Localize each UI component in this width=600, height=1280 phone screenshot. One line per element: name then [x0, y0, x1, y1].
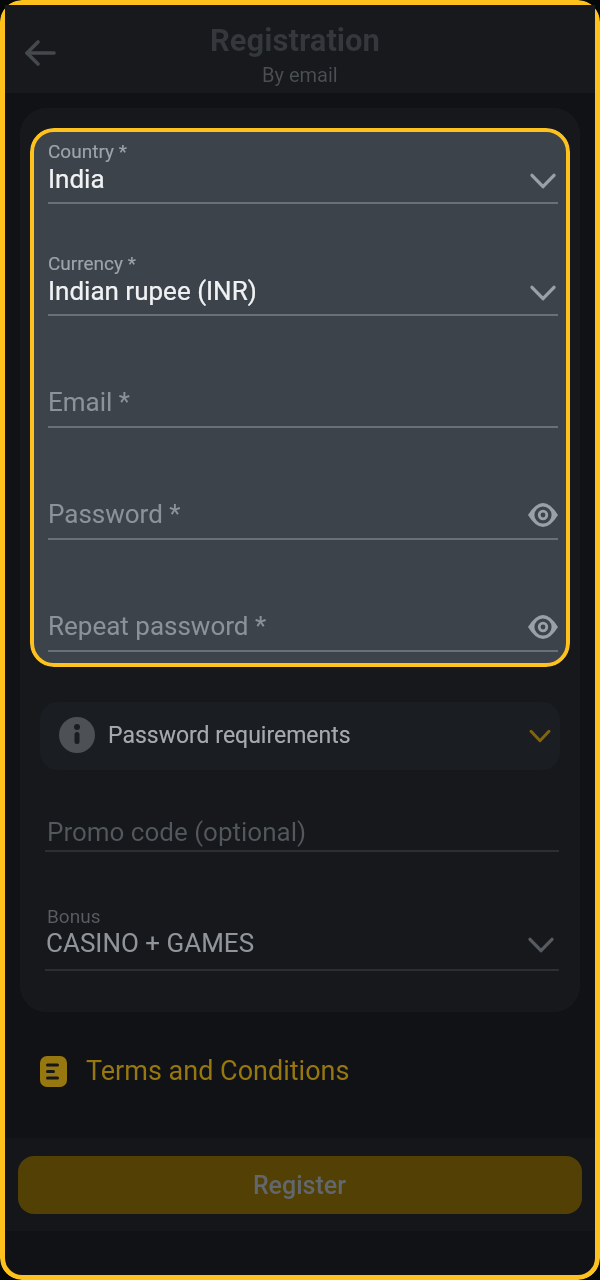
button[interactable]: [34, 1046, 354, 1096]
staticText: Password *: [48, 499, 181, 529]
button[interactable]: [34, 482, 566, 540]
staticText: Registration: [210, 22, 380, 58]
staticText: Register: [253, 1171, 347, 1200]
staticText: Bonus: [47, 905, 101, 927]
staticText: India: [48, 164, 105, 194]
button[interactable]: [34, 594, 566, 652]
button[interactable]: [40, 900, 560, 970]
staticText: Indian rupee (INR): [48, 276, 257, 306]
button[interactable]: [18, 30, 64, 76]
button[interactable]: [34, 370, 566, 428]
button[interactable]: [34, 246, 566, 316]
staticText: Password requirements: [108, 722, 351, 749]
staticText: Terms and Conditions: [86, 1055, 350, 1087]
button[interactable]: [40, 806, 560, 856]
button[interactable]: [40, 702, 560, 770]
staticText: Promo code (optional): [47, 817, 307, 847]
button[interactable]: [18, 1156, 582, 1214]
staticText: CASINO + GAMES: [46, 928, 255, 958]
button[interactable]: [34, 134, 566, 204]
staticText: Country *: [48, 140, 127, 162]
staticText: Repeat password *: [48, 611, 267, 641]
staticText: By email: [262, 63, 338, 86]
staticText: Email *: [48, 387, 131, 417]
staticText: Currency *: [48, 252, 136, 274]
